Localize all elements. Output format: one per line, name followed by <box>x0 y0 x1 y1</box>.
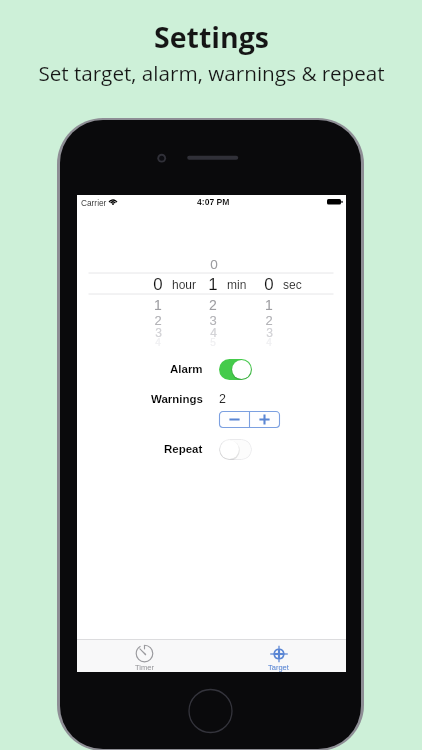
staticText: 0 <box>153 275 163 293</box>
staticText: Alarm <box>170 363 203 376</box>
staticText: 3 <box>155 326 162 339</box>
staticText: 2 <box>154 313 162 328</box>
staticText: 3 <box>209 313 217 328</box>
button[interactable]: Decrease warnings <box>219 411 249 428</box>
staticText: Timer <box>135 663 154 671</box>
staticText: 2 <box>219 392 226 406</box>
staticText: 1 <box>208 275 218 293</box>
staticText: 1 <box>265 297 273 313</box>
staticText: min <box>227 278 247 291</box>
staticText: Settings <box>154 18 269 57</box>
staticText: 1 <box>154 297 162 313</box>
button[interactable]: Alarm on <box>219 359 252 380</box>
button[interactable]: Target tab <box>211 640 346 672</box>
button[interactable]: Repeat off <box>219 439 252 460</box>
staticText: Target <box>268 663 289 671</box>
staticText: 0 <box>210 257 218 272</box>
button[interactable]: Timer tab <box>77 640 211 672</box>
staticText: 4 <box>210 326 217 339</box>
staticText: hour <box>172 278 197 291</box>
button[interactable]: Increase warnings <box>249 411 280 428</box>
staticText: 0 <box>264 275 274 293</box>
staticText: 5 <box>210 337 216 348</box>
staticText: Repeat <box>164 443 203 456</box>
staticText: 3 <box>266 326 273 339</box>
staticText: 4:07 PM <box>197 197 230 207</box>
staticText: 2 <box>265 313 273 328</box>
staticText: sec <box>283 278 302 291</box>
staticText: Carrier <box>81 198 107 207</box>
staticText: 2 <box>209 297 217 313</box>
staticText: 4 <box>266 337 272 348</box>
staticText: Set target, alarm, warnings & repeat <box>38 59 385 87</box>
staticText: 4 <box>155 337 161 348</box>
staticText: Warnings <box>151 393 203 406</box>
